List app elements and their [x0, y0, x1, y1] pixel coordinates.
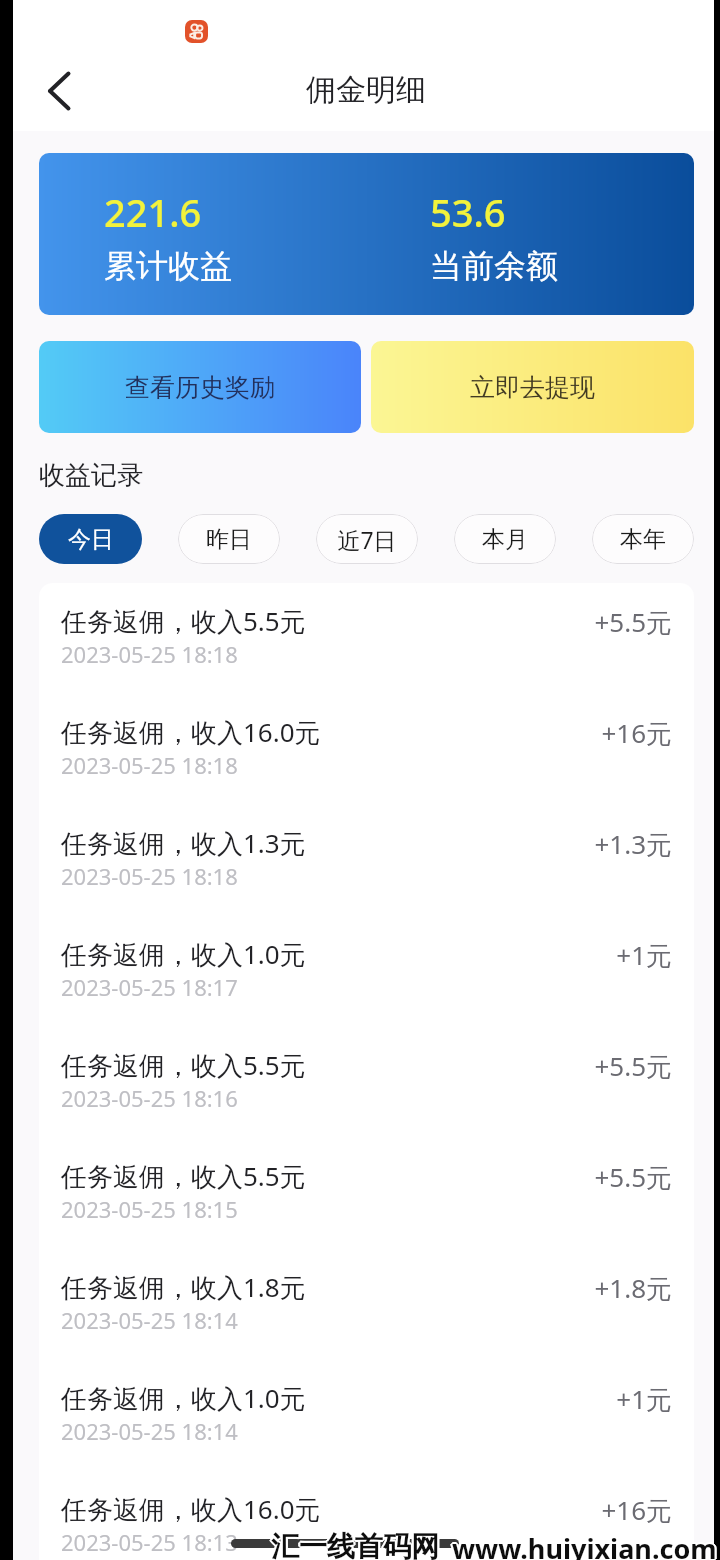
staticText: +1.3元	[39, 826, 672, 862]
staticText: www.huiyixian.com	[453, 1529, 718, 1560]
staticText: 累计收益	[104, 246, 232, 286]
staticText: 2023-05-25 18:18	[61, 750, 238, 780]
staticText: www.huiyixian.com	[452, 1532, 717, 1560]
staticText: www.huiyixian.com	[452, 1530, 717, 1560]
staticText: +5.5元	[39, 1159, 672, 1195]
staticText: 本年	[620, 525, 666, 554]
staticText: +1元	[39, 937, 672, 973]
button[interactable]: 任务返佣，收入1.0元	[39, 916, 694, 1027]
staticText: +1元	[39, 1381, 672, 1417]
staticText: 221.6	[104, 186, 202, 238]
staticText: 任务返佣，收入1.3元	[61, 825, 306, 861]
button[interactable]: 任务返佣，收入1.8元	[39, 1249, 694, 1360]
staticText: www.huiyixian.com	[453, 1531, 718, 1560]
staticText: 任务返佣，收入16.0元	[61, 1491, 321, 1527]
staticText: 查看历史奖励	[125, 372, 275, 403]
button[interactable]: 昨日	[178, 514, 280, 564]
staticText: 汇一线首码网	[271, 1531, 439, 1560]
staticText: 近7日	[337, 524, 397, 555]
button[interactable]: 任务返佣，收入16.0元	[39, 694, 694, 805]
button[interactable]: 任务返佣，收入5.5元	[39, 583, 694, 694]
button[interactable]: 本月	[454, 514, 556, 564]
staticText: 汇一线首码网	[272, 1528, 440, 1560]
button[interactable]: 任务返佣，收入5.5元	[39, 1138, 694, 1249]
staticText: 昨日	[206, 525, 252, 554]
staticText: 收益记录	[39, 459, 143, 492]
staticText: 汇一线首码网	[270, 1530, 438, 1560]
staticText: 任务返佣，收入16.0元	[61, 714, 321, 750]
button[interactable]: 今日	[39, 514, 142, 564]
staticText: 2023-05-25 18:13	[61, 1527, 238, 1557]
staticText: 本月	[482, 525, 528, 554]
staticText: 任务返佣，收入1.8元	[61, 1269, 306, 1305]
staticText: 汇一线首码网	[271, 1529, 439, 1560]
staticText: 53.6	[430, 186, 506, 238]
staticText: 2023-05-25 18:14	[61, 1416, 238, 1446]
staticText: 汇一线首码网	[270, 1528, 438, 1560]
staticText: www.huiyixian.com	[451, 1531, 716, 1560]
staticText: 任务返佣，收入5.5元	[61, 603, 306, 639]
button[interactable]: 任务返佣，收入1.3元	[39, 805, 694, 916]
staticText: 任务返佣，收入5.5元	[61, 1158, 306, 1194]
staticText: 立即去提现	[470, 372, 595, 403]
button[interactable]: 221.6	[39, 153, 694, 315]
staticText: +5.5元	[39, 1048, 672, 1084]
staticText: 汇一线首码网	[272, 1530, 440, 1560]
staticText: 当前余额	[430, 246, 558, 286]
button[interactable]: App icon	[185, 20, 208, 43]
button[interactable]: 查看历史奖励	[39, 341, 361, 433]
staticText: 任务返佣，收入5.5元	[61, 1047, 306, 1083]
staticText: 2023-05-25 18:18	[61, 861, 238, 891]
staticText: 汇一线首码网	[269, 1529, 437, 1560]
staticText: 任务返佣，收入1.0元	[61, 1380, 306, 1416]
staticText: www.huiyixian.com	[450, 1530, 715, 1560]
button[interactable]: 立即去提现	[371, 341, 694, 433]
staticText: 2023-05-25 18:16	[61, 1083, 238, 1113]
staticText: +16元	[39, 1492, 672, 1528]
staticText: 2023-05-25 18:17	[61, 972, 238, 1002]
button[interactable]: 近7日	[316, 514, 418, 564]
button[interactable]: 任务返佣，收入16.0元	[39, 1471, 694, 1560]
staticText: +5.5元	[39, 604, 672, 640]
staticText: 佣金明细	[306, 71, 426, 109]
staticText: www.huiyixian.com	[451, 1529, 716, 1560]
staticText: 汇一线首码网	[273, 1529, 441, 1560]
button[interactable]: 本年	[592, 514, 694, 564]
button[interactable]: Back	[30, 62, 88, 120]
button[interactable]: 任务返佣，收入5.5元	[39, 1027, 694, 1138]
staticText: 2023-05-25 18:14	[61, 1305, 238, 1335]
staticText: 汇一线首码网	[271, 1527, 439, 1560]
staticText: 2023-05-25 18:15	[61, 1194, 238, 1224]
staticText: 2023-05-25 18:18	[61, 639, 238, 669]
staticText: 任务返佣，收入1.0元	[61, 936, 306, 972]
staticText: +16元	[39, 715, 672, 751]
staticText: 今日	[68, 525, 114, 554]
staticText: www.huiyixian.com	[452, 1528, 717, 1560]
button[interactable]: 任务返佣，收入1.0元	[39, 1360, 694, 1471]
staticText: +1.8元	[39, 1270, 672, 1306]
staticText: www.huiyixian.com	[454, 1530, 719, 1560]
